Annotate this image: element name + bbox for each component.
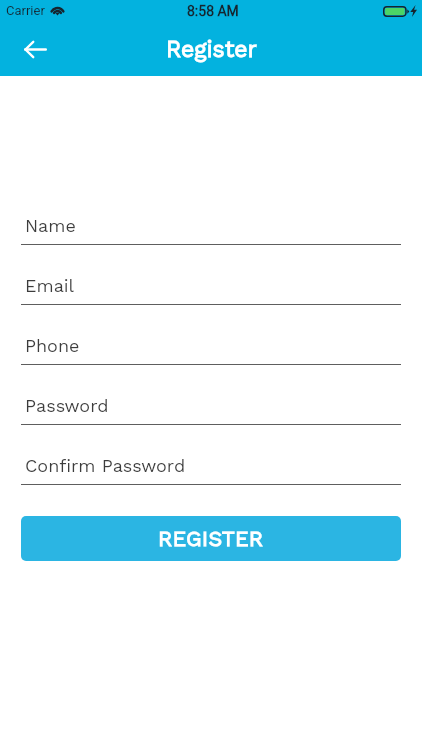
staticText: Password [25, 395, 109, 416]
staticText: Carrier [6, 3, 45, 18]
staticText: Name [25, 215, 76, 236]
staticText: Confirm Password [25, 455, 186, 476]
button[interactable]: Password [21, 395, 401, 425]
staticText: Register [166, 36, 257, 63]
button[interactable]: REGISTER [21, 516, 401, 561]
button[interactable]: Email [21, 275, 401, 305]
button[interactable]: Back [12, 27, 58, 71]
button[interactable]: Confirm Password [21, 455, 401, 485]
button[interactable]: Name [21, 215, 401, 245]
button[interactable]: Phone [21, 335, 401, 365]
staticText: REGISTER [158, 526, 264, 551]
staticText: Phone [25, 335, 80, 356]
staticText: 8:58 AM [187, 3, 239, 19]
staticText: Email [25, 275, 75, 296]
